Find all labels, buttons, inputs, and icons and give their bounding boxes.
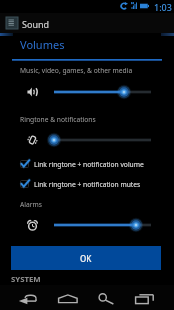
staticText: Ringtone & notifications <box>20 115 96 124</box>
button[interactable] <box>0 216 174 234</box>
staticText: Alarms <box>20 200 42 209</box>
button[interactable]: OK <box>11 246 161 270</box>
staticText: OK <box>80 253 92 264</box>
staticText: Sound <box>22 18 50 30</box>
staticText: Link ringtone + notification volume <box>34 160 144 169</box>
button[interactable]: Recents <box>131 285 169 310</box>
button[interactable] <box>0 131 174 149</box>
button[interactable] <box>0 83 174 101</box>
button[interactable]: Link ringtone + notification mutes <box>0 177 174 191</box>
staticText: Link ringtone + notification mutes <box>34 180 141 189</box>
button[interactable]: Home <box>55 285 93 310</box>
button[interactable]: Link ringtone + notification volume <box>0 157 174 171</box>
staticText: SYSTEM <box>11 274 41 285</box>
button[interactable]: Back <box>18 285 56 310</box>
staticText: 1:03 <box>154 1 172 13</box>
button[interactable]: Search <box>95 285 131 310</box>
staticText: Volumes <box>20 37 65 52</box>
staticText: Music, video, games, & other media <box>20 66 133 75</box>
